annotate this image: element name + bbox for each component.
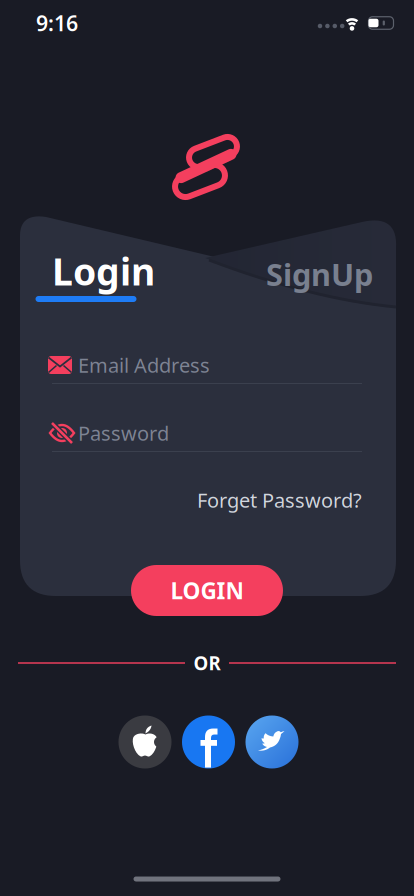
button[interactable]: LOGIN	[131, 565, 283, 616]
button[interactable]: Password	[46, 413, 366, 457]
staticText: 9:16	[36, 9, 78, 37]
button[interactable]	[245, 715, 298, 768]
staticText: SignUp	[266, 254, 373, 294]
staticText: OR	[193, 651, 220, 675]
staticText: Password	[78, 420, 169, 446]
button[interactable]: SignUp	[173, 254, 373, 294]
staticText: LOGIN	[170, 575, 243, 605]
button[interactable]: Email Address	[46, 345, 366, 389]
staticText: Login	[52, 246, 155, 296]
staticText: Email Address	[78, 352, 210, 378]
button[interactable]	[118, 715, 171, 768]
button[interactable]: Forget Password?	[122, 487, 362, 513]
staticText: Forget Password?	[197, 487, 362, 513]
button[interactable]	[182, 715, 235, 768]
